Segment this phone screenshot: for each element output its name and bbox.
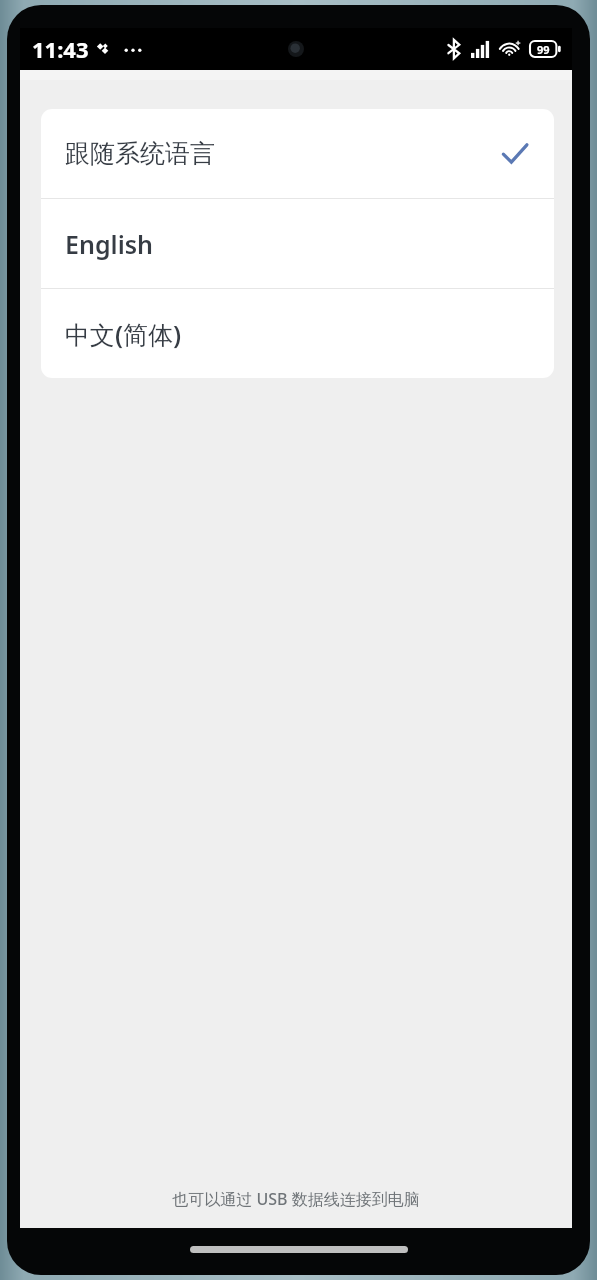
- button[interactable]: 跟随系统语言: [41, 109, 554, 198]
- staticText: 99: [537, 42, 550, 57]
- staticText: 跟随系统语言: [65, 138, 215, 169]
- button[interactable]: English: [41, 199, 554, 288]
- staticText: 中文(简体): [65, 317, 182, 351]
- staticText: 也可以通过 USB 数据线连接到电脑: [172, 1188, 420, 1210]
- staticText: English: [65, 227, 153, 261]
- button[interactable]: 中文(简体): [41, 289, 554, 378]
- staticText: 11:43: [32, 34, 89, 64]
